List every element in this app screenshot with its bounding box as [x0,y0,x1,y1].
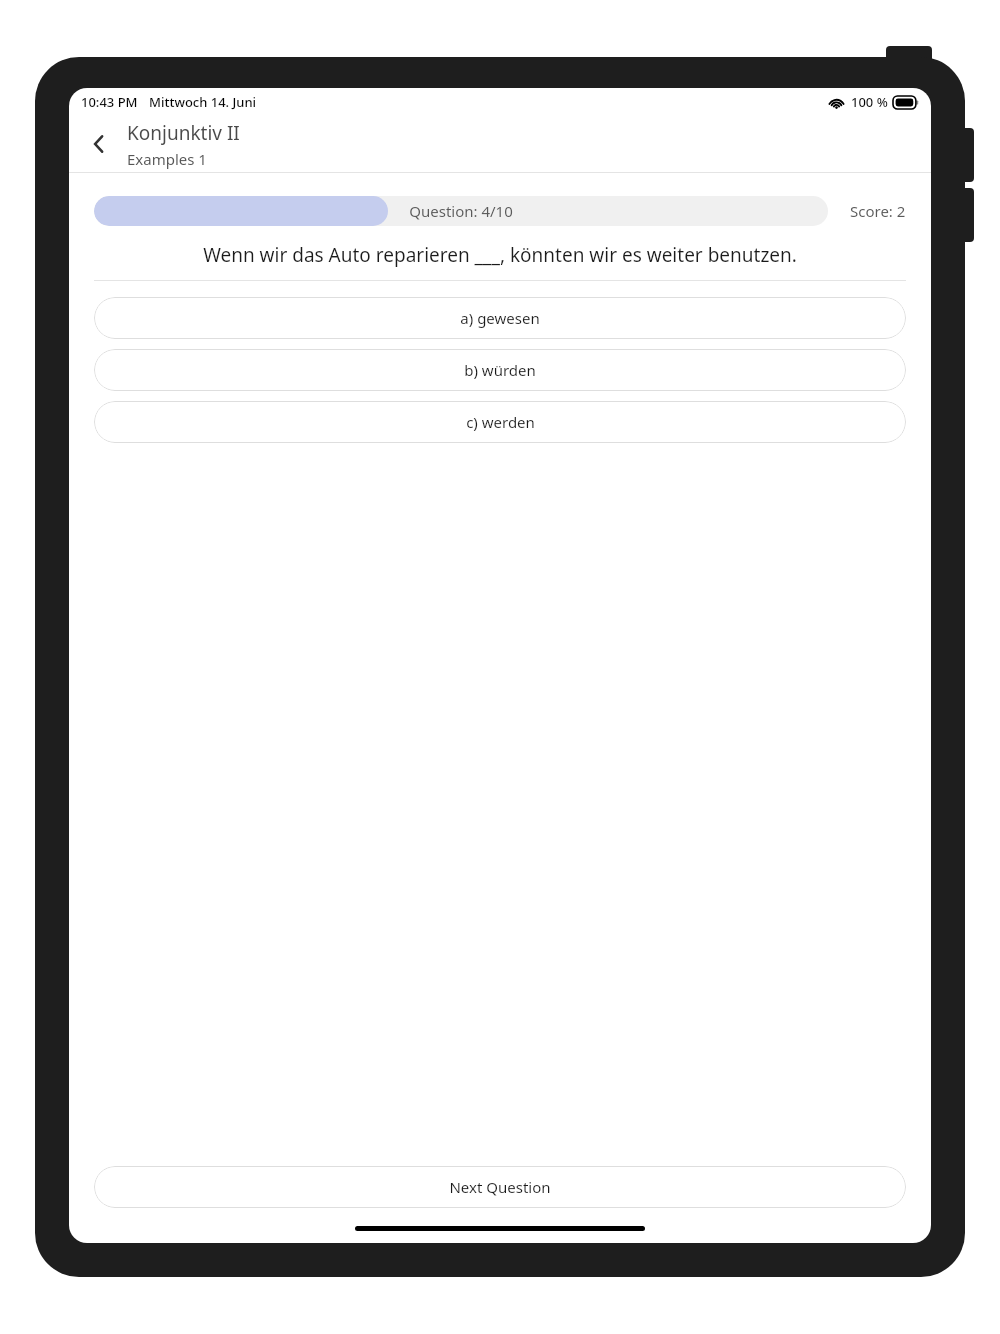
staticText: 10:43 PM [81,93,138,111]
staticText: a) gewesen [460,308,540,328]
staticText: Question: 4/10 [94,201,828,221]
staticText: Score: 2 [850,201,906,221]
button[interactable]: Next Question [94,1166,906,1208]
staticText: c) werden [466,412,535,432]
staticText: Wenn wir das Auto reparieren ___, könnte… [203,242,797,268]
button[interactable]: b) würden [94,349,906,391]
staticText: b) würden [464,360,536,380]
staticText: Next Question [449,1177,551,1197]
staticText: 100 % [851,93,888,111]
staticText: Konjunktiv II [127,120,240,146]
staticText: Examples 1 [127,149,207,169]
button[interactable]: c) werden [94,401,906,443]
button[interactable]: Back [77,122,121,166]
staticText: Mittwoch 14. Juni [149,93,257,111]
button[interactable]: a) gewesen [94,297,906,339]
